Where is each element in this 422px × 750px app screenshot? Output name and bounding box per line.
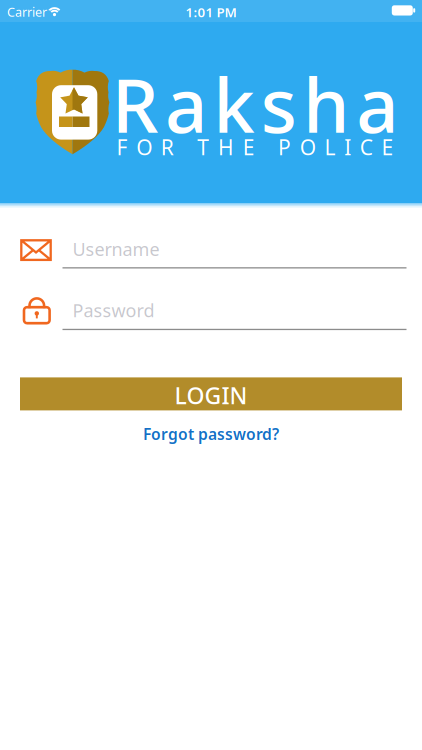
staticText: Forgot password? bbox=[143, 423, 279, 445]
button[interactable]: Password bbox=[18, 296, 406, 331]
staticText: E bbox=[381, 133, 393, 161]
staticText: LOGIN bbox=[174, 380, 247, 411]
staticText: P bbox=[278, 133, 291, 161]
staticText: k bbox=[213, 53, 254, 155]
staticText: 1:01 PM bbox=[185, 3, 236, 21]
button[interactable]: Username bbox=[18, 236, 406, 270]
staticText: O bbox=[136, 133, 152, 161]
staticText: a bbox=[356, 53, 398, 155]
staticText: I bbox=[344, 133, 351, 161]
staticText: C bbox=[360, 133, 373, 161]
staticText: R bbox=[112, 53, 159, 155]
staticText: a bbox=[165, 53, 207, 155]
staticText: s bbox=[261, 53, 297, 155]
staticText: O bbox=[300, 133, 316, 161]
staticText: Password bbox=[73, 298, 155, 322]
staticText: E bbox=[243, 133, 255, 161]
staticText: R bbox=[161, 133, 174, 161]
staticText: F bbox=[116, 133, 127, 161]
staticText: H bbox=[218, 133, 234, 161]
staticText: Username bbox=[73, 237, 160, 261]
button[interactable]: LOGIN bbox=[20, 377, 402, 410]
staticText: h bbox=[303, 53, 350, 155]
staticText: L bbox=[324, 133, 335, 161]
staticText: Carrier bbox=[7, 3, 47, 20]
button[interactable]: Forgot password? bbox=[143, 423, 279, 445]
staticText: T bbox=[197, 133, 209, 161]
